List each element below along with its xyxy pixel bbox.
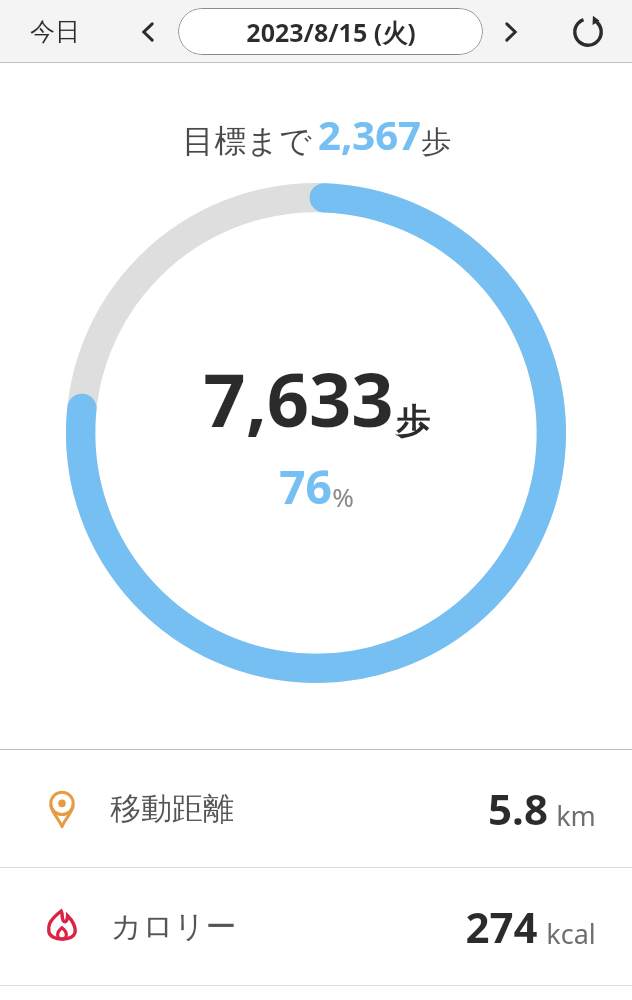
staticText: 今日 (30, 16, 80, 47)
other: Distance (38, 785, 86, 833)
staticText: 歩 (396, 400, 430, 443)
staticText: 目標まで (182, 121, 312, 161)
button[interactable]: Distance (0, 750, 632, 867)
staticText: % (332, 479, 354, 514)
button[interactable]: Previous day (126, 10, 170, 54)
staticText: 2,367 (318, 107, 421, 161)
staticText: 274 (465, 898, 538, 955)
staticText: カロリー (110, 907, 237, 946)
staticText: kcal (546, 915, 596, 952)
staticText: 2023/8/15 (火) (246, 15, 416, 49)
staticText: 7,633 (203, 348, 394, 449)
staticText: 5.8 (488, 780, 548, 837)
staticText: 移動距離 (110, 789, 234, 828)
staticText: 歩 (421, 123, 451, 161)
button[interactable]: 今日 (24, 10, 86, 53)
button[interactable]: Next day (489, 10, 533, 54)
staticText: km (556, 797, 596, 834)
button[interactable]: 2023/8/15 (火) (178, 8, 483, 55)
staticText: 76 (279, 455, 332, 518)
button[interactable]: Calories (0, 868, 632, 985)
button[interactable]: Refresh (560, 4, 616, 60)
other: Calories (38, 903, 86, 951)
